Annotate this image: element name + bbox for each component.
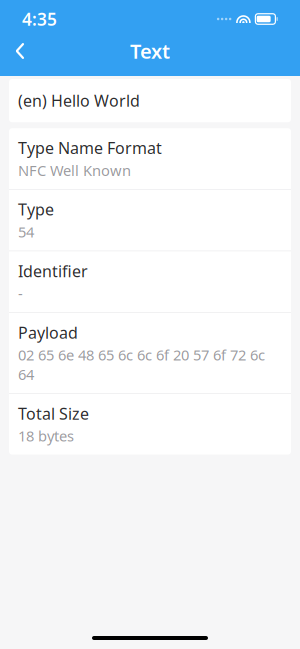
staticText: 18 bytes	[18, 426, 74, 446]
staticText: Text	[130, 38, 170, 64]
staticText: Type Name Format	[18, 137, 162, 158]
staticText: Identifier	[18, 260, 88, 281]
staticText: 54	[18, 222, 34, 241]
staticText: NFC Well Known	[18, 160, 131, 180]
staticText: -	[18, 283, 23, 303]
staticText: 4:35	[22, 7, 57, 30]
staticText: Total Size	[18, 403, 89, 424]
staticText: Type	[18, 199, 54, 220]
staticText: 02 65 6e 48 65 6c 6c 6f 20 57 6f 72 6c 6…	[18, 345, 265, 384]
staticText: (en) Hello World	[18, 90, 140, 111]
button[interactable]: Back	[0, 32, 40, 70]
staticText: Payload	[18, 322, 78, 343]
